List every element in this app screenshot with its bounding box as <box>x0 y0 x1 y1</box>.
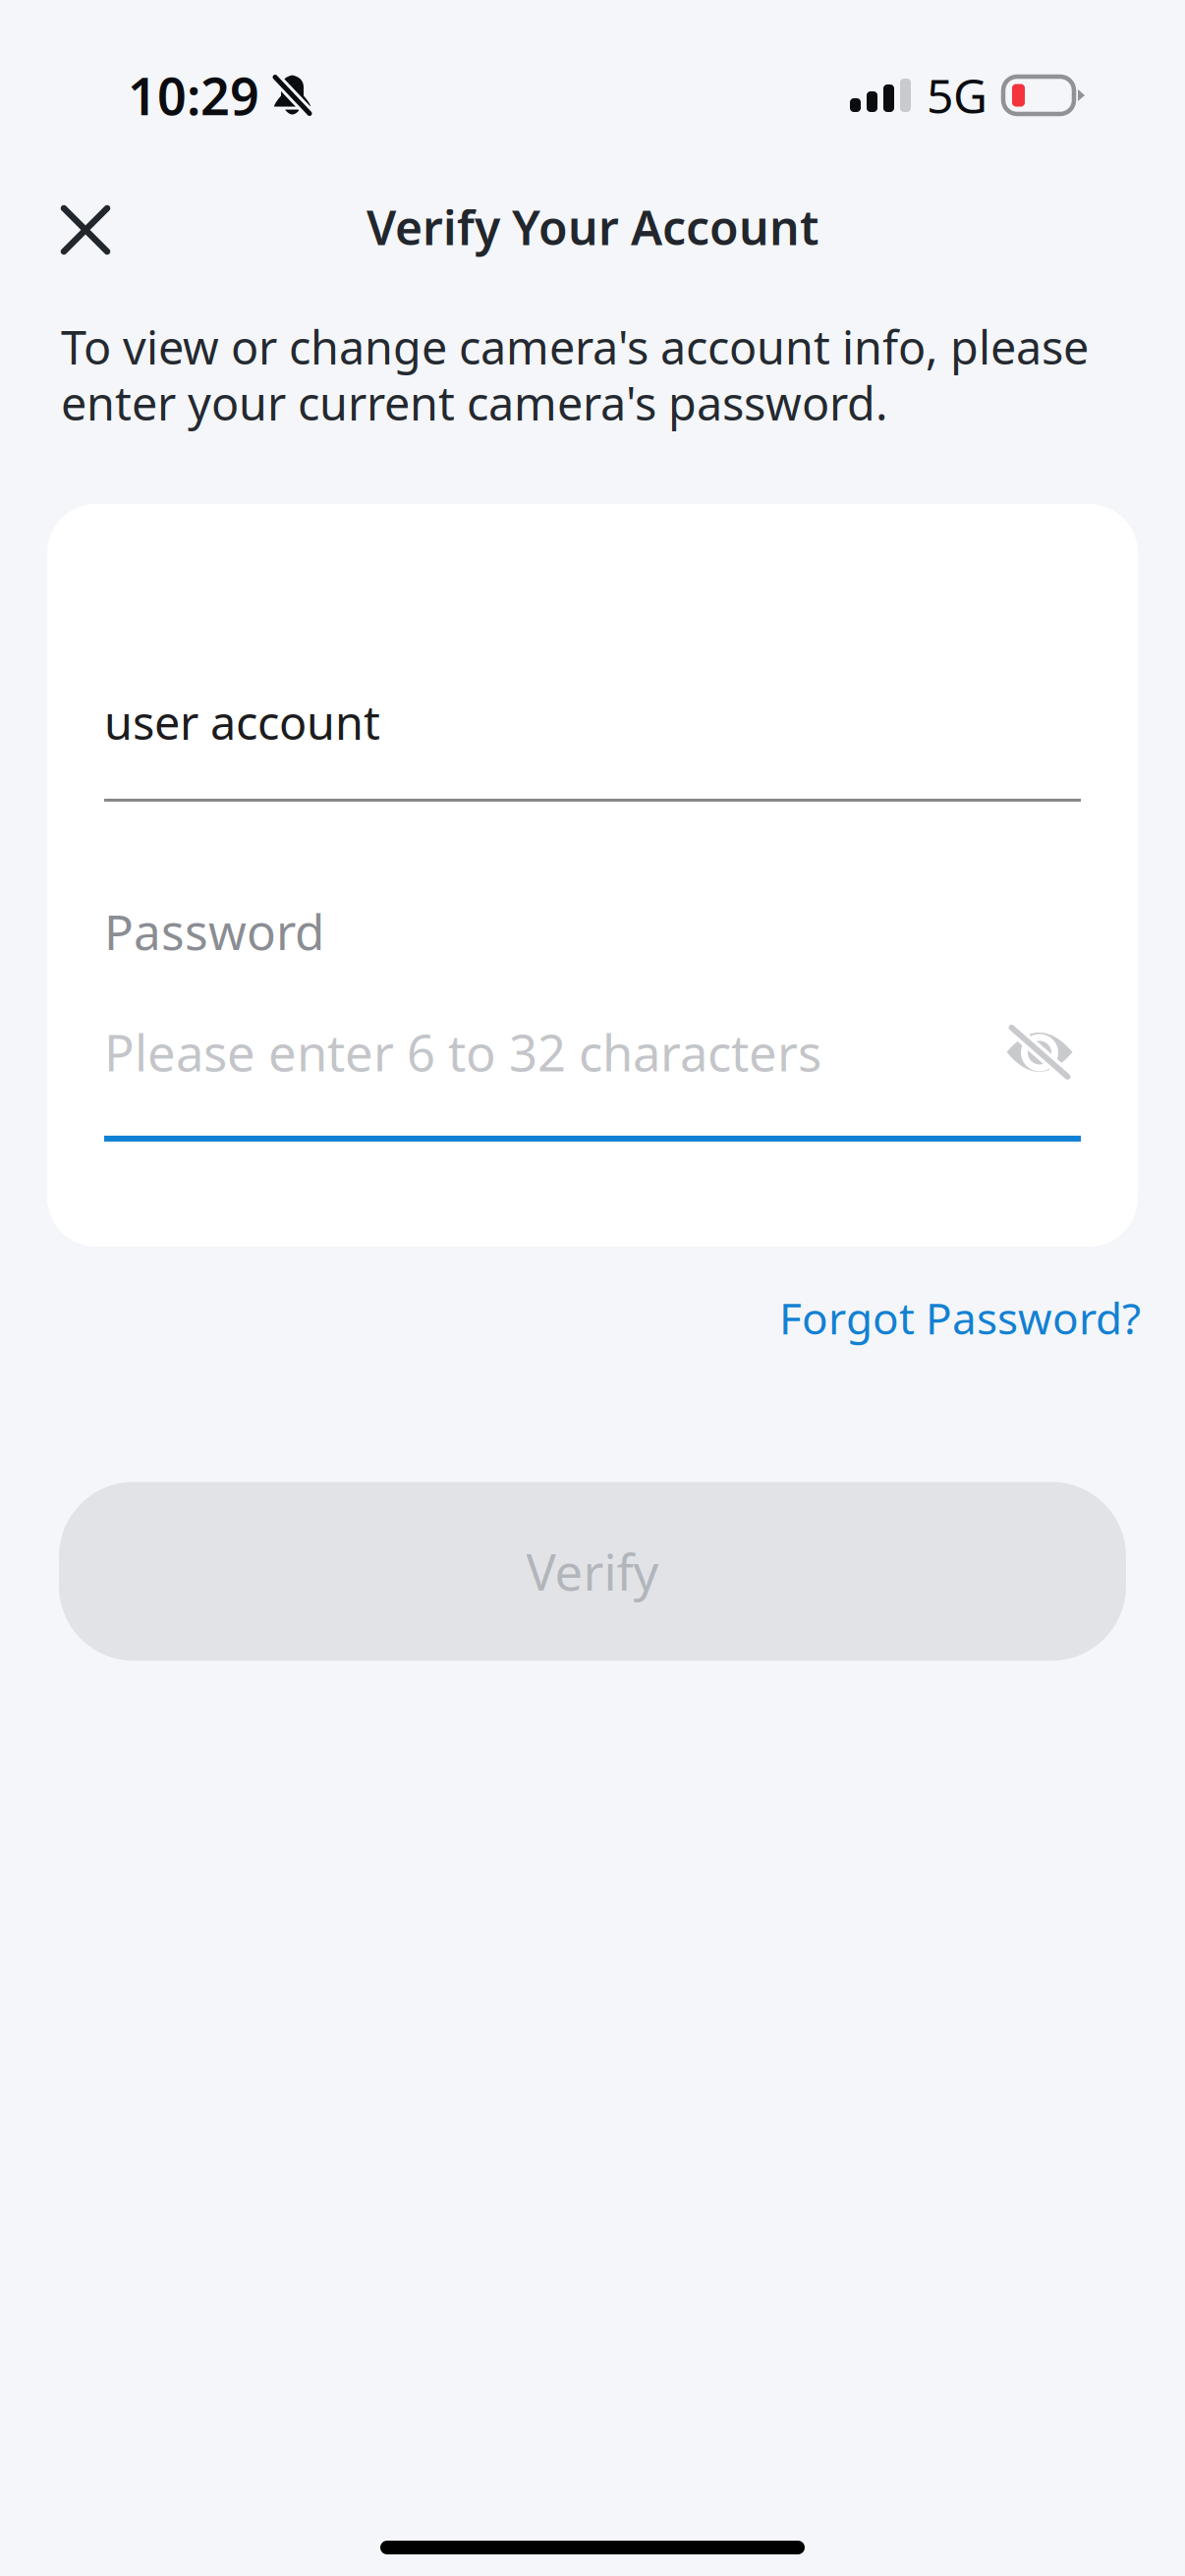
staticText: Verify Your Account <box>367 196 818 258</box>
staticText: To view or change camera's account info,… <box>61 316 1089 433</box>
staticText: Verify <box>526 1538 659 1604</box>
staticText: 5G <box>927 64 987 127</box>
button[interactable]: Forgot Password? <box>779 1277 1141 1358</box>
staticText: Password <box>104 899 324 963</box>
staticText: Forgot Password? <box>779 1289 1141 1346</box>
button[interactable]: Verify <box>59 1482 1126 1661</box>
button[interactable]: Close <box>36 178 135 276</box>
staticText: 10:29 <box>128 61 259 129</box>
button[interactable]: Show password <box>998 1025 1081 1080</box>
staticText: Please enter 6 to 32 characters <box>104 1019 821 1085</box>
staticText: user account <box>104 692 380 753</box>
